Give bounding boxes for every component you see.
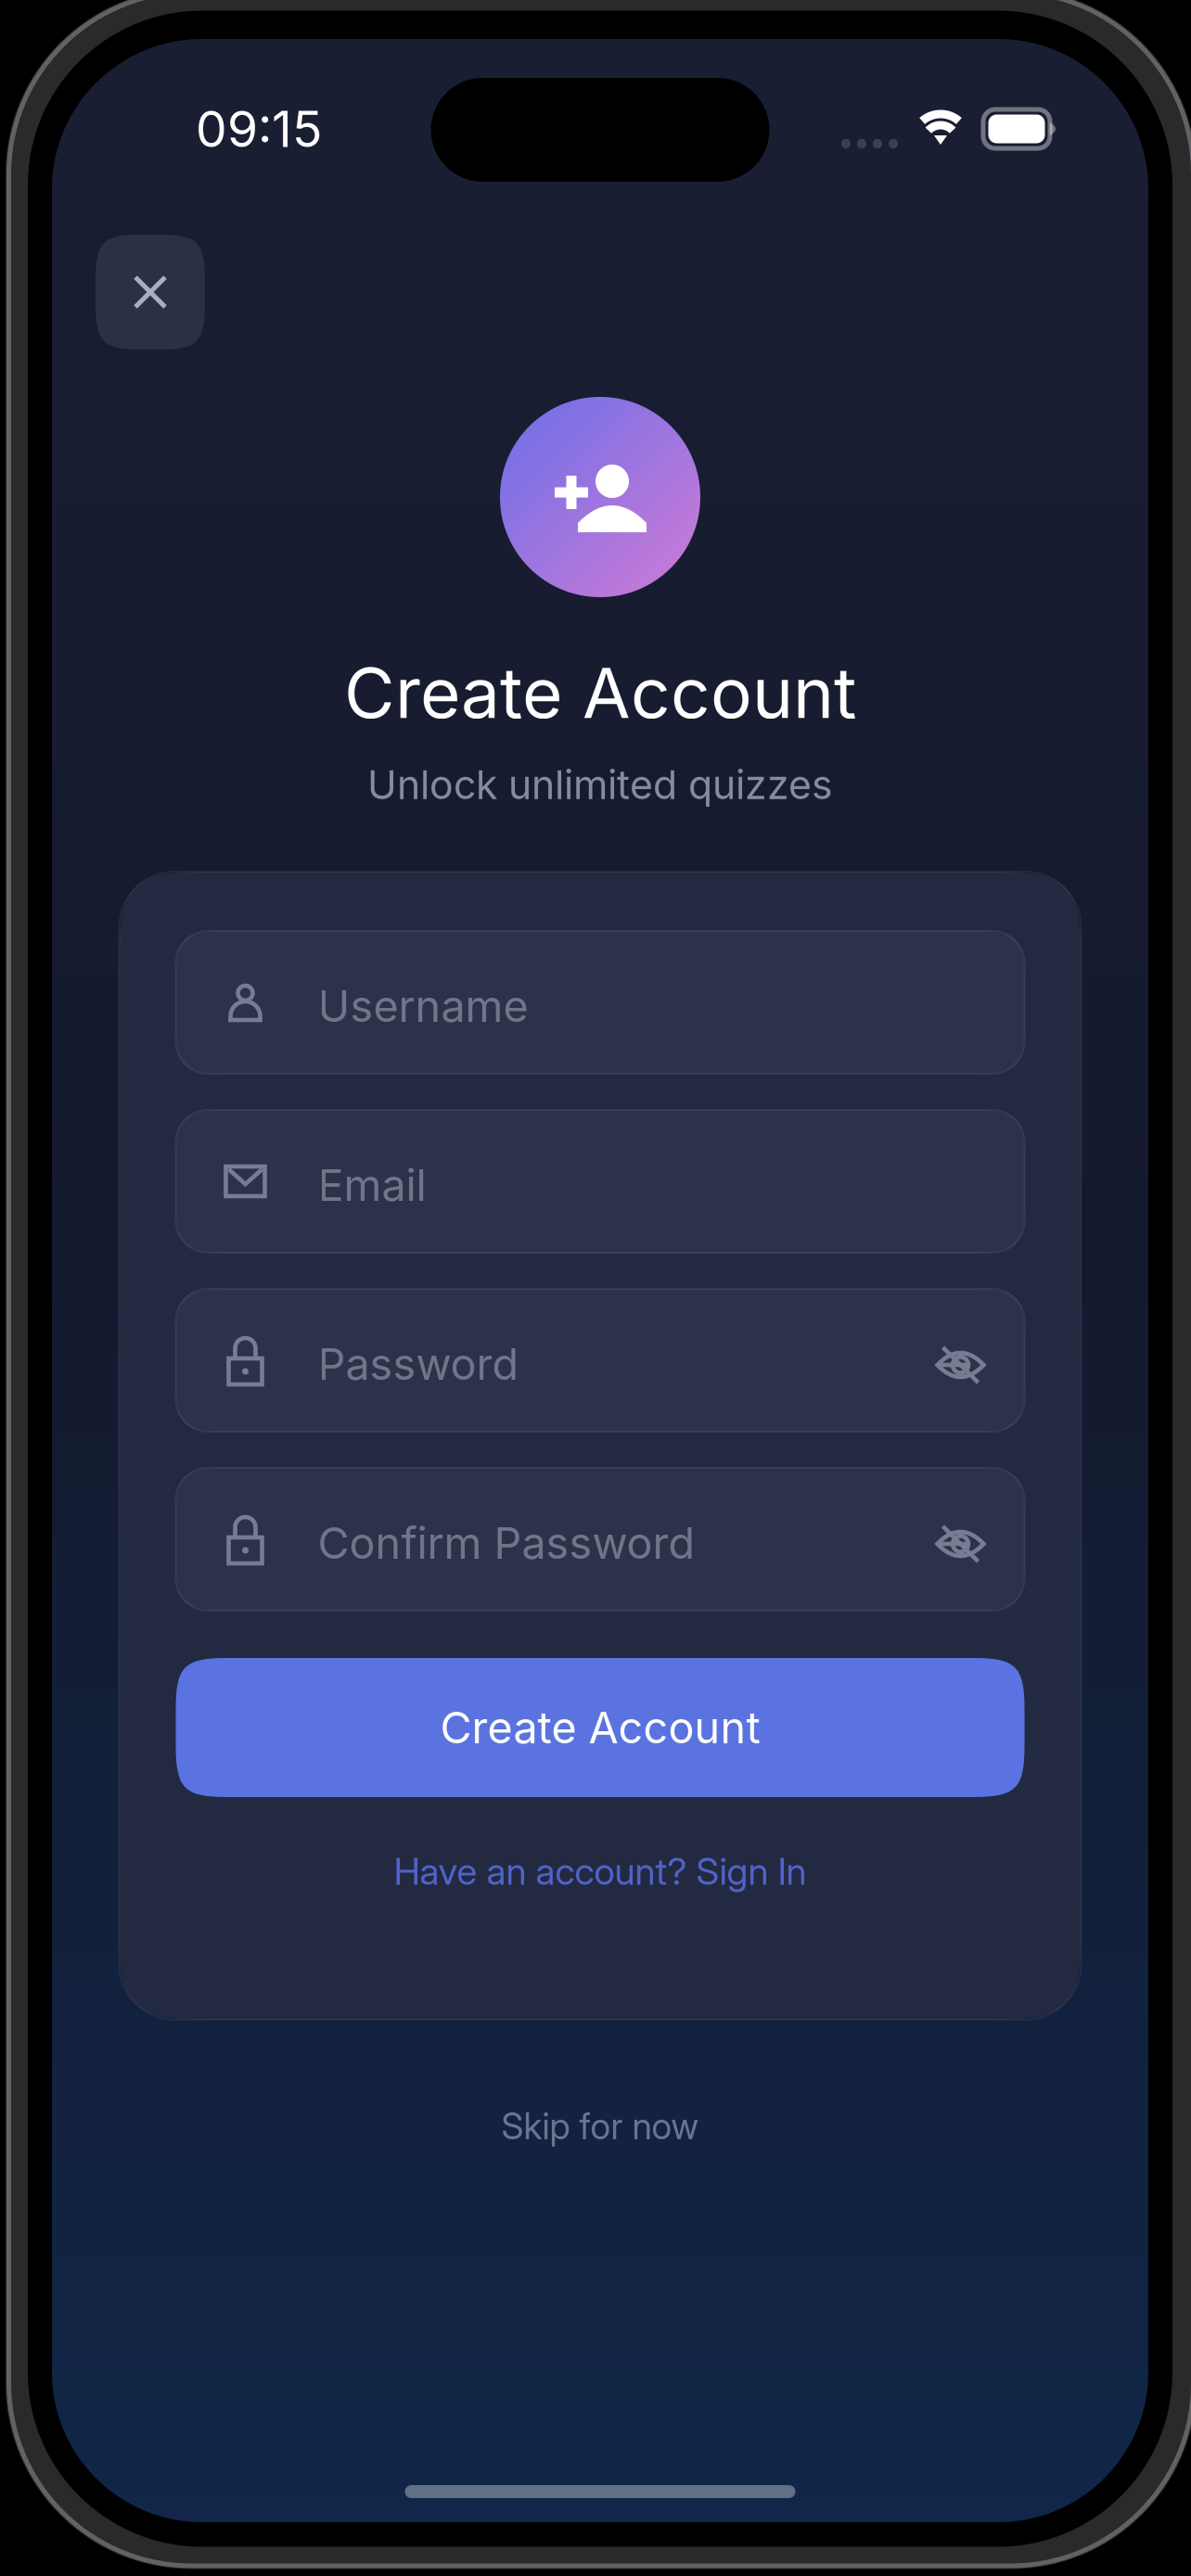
button[interactable]: Close: [96, 235, 205, 350]
button[interactable]: Skip for now: [368, 2103, 832, 2149]
staticText: Password: [318, 1338, 519, 1390]
button[interactable]: Username: [176, 931, 1025, 1074]
button[interactable]: Confirm Password: [176, 1468, 1025, 1611]
staticText: Username: [318, 980, 528, 1032]
staticText: Have an account? Sign In: [394, 1849, 807, 1894]
staticText: Confirm Password: [318, 1517, 695, 1569]
staticText: Unlock unlimited quizzes: [367, 761, 833, 809]
button[interactable]: Create Account: [176, 1658, 1025, 1797]
staticText: Create Account: [440, 1701, 760, 1754]
staticText: Skip for now: [501, 2105, 699, 2148]
staticText: Email: [318, 1159, 426, 1211]
staticText: 09:15: [196, 99, 322, 159]
staticText: Create Account: [344, 651, 856, 735]
button[interactable]: Email: [176, 1110, 1025, 1253]
button[interactable]: Password: [176, 1289, 1025, 1432]
button[interactable]: Have an account? Sign In: [176, 1847, 1025, 1895]
